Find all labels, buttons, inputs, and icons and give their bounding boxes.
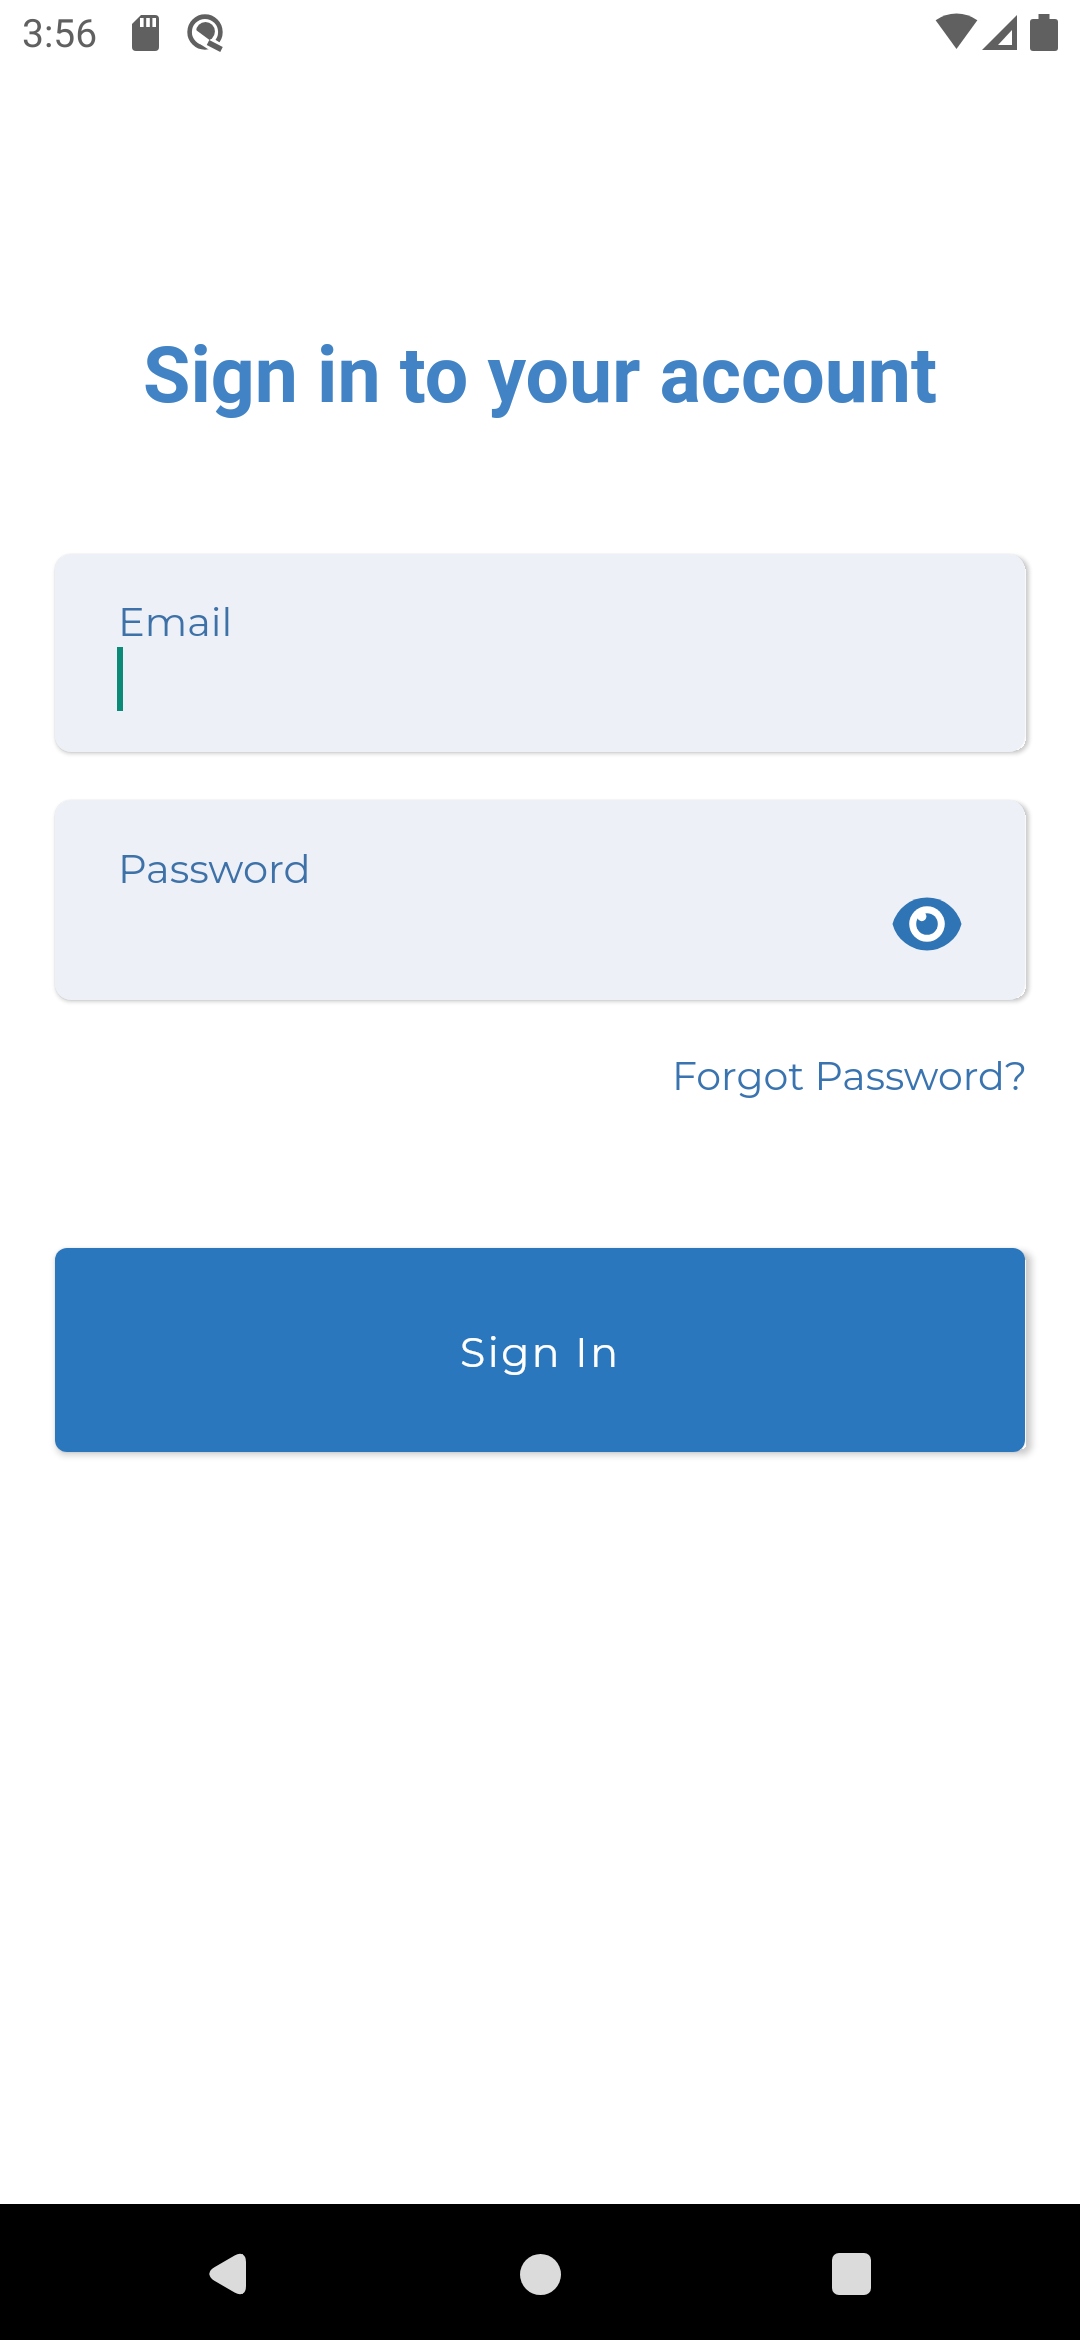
button[interactable] bbox=[887, 894, 967, 954]
button[interactable] bbox=[186, 2234, 266, 2314]
button[interactable]: Password bbox=[55, 800, 1025, 1000]
staticText: Sign In bbox=[460, 1327, 621, 1377]
button[interactable]: Email bbox=[55, 554, 1025, 752]
staticText: Email bbox=[118, 597, 233, 646]
staticText: 3:56 bbox=[22, 11, 98, 57]
button[interactable] bbox=[811, 2234, 891, 2314]
button[interactable]: Sign In bbox=[55, 1248, 1025, 1452]
staticText: Forgot Password? bbox=[672, 1052, 1028, 1100]
staticText: Password bbox=[118, 844, 311, 893]
staticText: Sign in to your account bbox=[0, 331, 1080, 421]
button[interactable]: Forgot Password? bbox=[672, 1052, 1028, 1100]
button[interactable] bbox=[500, 2234, 580, 2314]
